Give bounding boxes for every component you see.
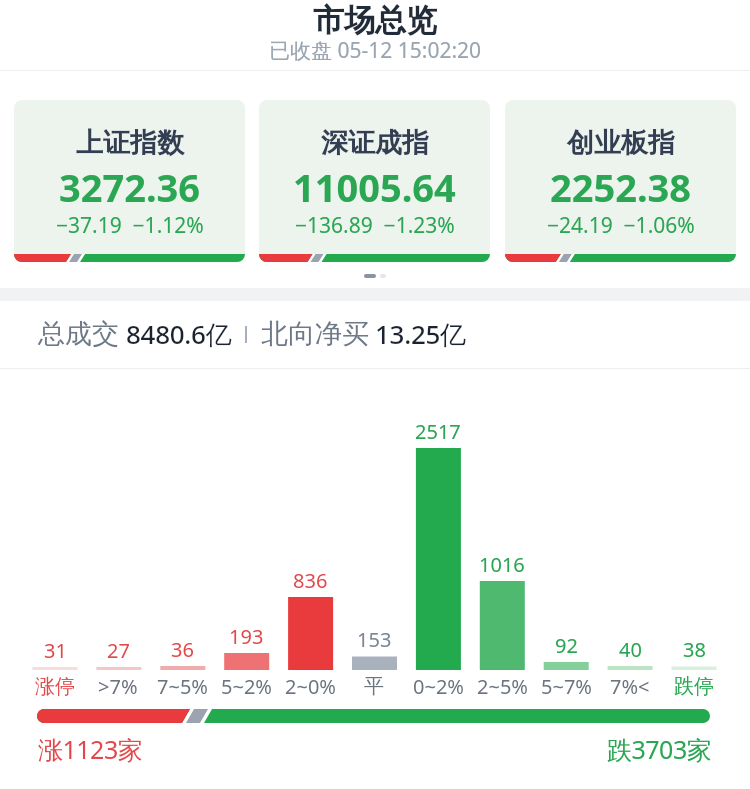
- staticText: 平: [364, 674, 384, 699]
- staticText: 36: [171, 636, 194, 663]
- staticText: 创业板指: [567, 126, 675, 160]
- staticText: 7~5%: [157, 673, 208, 700]
- button[interactable]: 上证指数: [14, 100, 245, 262]
- staticText: 2~0%: [285, 673, 336, 700]
- staticText: 836: [293, 567, 328, 594]
- staticText: 92: [555, 632, 578, 659]
- staticText: 涨1123家: [38, 732, 143, 766]
- staticText: 153: [357, 626, 392, 653]
- staticText: 1016: [479, 551, 525, 578]
- staticText: 市场总览: [313, 1, 437, 40]
- staticText: 2517: [415, 418, 461, 445]
- staticText: 8480.6亿: [126, 316, 232, 352]
- staticText: −24.19 −1.06%: [547, 211, 695, 240]
- staticText: 涨停: [35, 674, 75, 699]
- staticText: 11005.64: [293, 161, 456, 213]
- button[interactable]: 总成交: [0, 301, 750, 368]
- button[interactable]: 深证成指: [259, 100, 490, 262]
- staticText: 0~2%: [413, 673, 464, 700]
- staticText: 深证成指: [321, 126, 429, 160]
- staticText: 193: [229, 623, 264, 650]
- staticText: 31: [44, 637, 67, 664]
- staticText: 27: [107, 637, 130, 664]
- staticText: 40: [619, 636, 642, 663]
- staticText: 跌停: [674, 674, 714, 699]
- button[interactable]: 创业板指: [505, 100, 736, 262]
- staticText: 7%<: [610, 673, 650, 700]
- staticText: 5~7%: [541, 673, 592, 700]
- staticText: >7%: [98, 673, 138, 700]
- staticText: 3272.36: [59, 161, 201, 213]
- staticText: −136.89 −1.23%: [295, 211, 455, 240]
- staticText: 2252.38: [550, 161, 692, 213]
- staticText: −37.19 −1.12%: [56, 211, 204, 240]
- staticText: 38: [683, 636, 706, 663]
- staticText: 总成交: [38, 317, 119, 351]
- staticText: 2~5%: [477, 673, 528, 700]
- staticText: 北向净买: [261, 317, 369, 351]
- staticText: 13.25亿: [375, 316, 466, 352]
- staticText: 5~2%: [221, 673, 272, 700]
- staticText: 跌3703家: [607, 732, 712, 766]
- staticText: 已收盘 05-12 15:02:20: [269, 36, 482, 62]
- staticText: 上证指数: [76, 126, 184, 160]
